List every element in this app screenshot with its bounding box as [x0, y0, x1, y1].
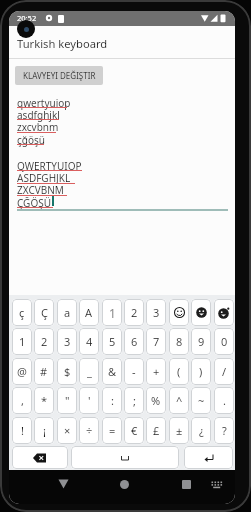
button[interactable]: ': [79, 387, 99, 414]
staticText: %: [151, 393, 161, 408]
staticText: $: [64, 364, 71, 379]
staticText: (: [177, 364, 181, 379]
button[interactable]: 6: [124, 328, 144, 355]
button[interactable]: [120, 480, 129, 489]
button[interactable]: 1: [102, 299, 122, 326]
button[interactable]: ç: [12, 299, 32, 326]
button[interactable]: -: [124, 358, 144, 385]
staticText: ': [88, 393, 91, 408]
button[interactable]: [12, 446, 68, 469]
staticText: 5: [109, 334, 116, 349]
button[interactable]: +: [146, 358, 166, 385]
button[interactable]: Ç: [34, 299, 54, 326]
staticText: 6: [131, 334, 138, 349]
button[interactable]: a: [57, 299, 77, 326]
staticText: +: [153, 364, 160, 379]
button[interactable]: [214, 299, 234, 326]
staticText: 7: [153, 334, 160, 349]
staticText: ¡: [43, 423, 46, 438]
staticText: A: [85, 305, 93, 320]
button[interactable]: ^: [169, 387, 189, 414]
button[interactable]: (: [169, 358, 189, 385]
button[interactable]: [191, 299, 211, 326]
button[interactable]: :: [102, 387, 122, 414]
button[interactable]: 1: [12, 328, 32, 355]
button[interactable]: ×: [57, 417, 77, 444]
button[interactable]: [58, 479, 69, 489]
staticText: 4: [86, 334, 93, 349]
button[interactable]: &: [102, 358, 122, 385]
staticText: ?: [222, 423, 227, 438]
button[interactable]: ~: [191, 387, 211, 414]
button[interactable]: ÷: [79, 417, 99, 444]
button[interactable]: 7: [146, 328, 166, 355]
staticText: -: [132, 364, 136, 379]
button[interactable]: [71, 446, 179, 469]
button[interactable]: =: [102, 417, 122, 444]
button[interactable]: *: [34, 387, 54, 414]
staticText: 20:52: [17, 13, 37, 23]
staticText: 8: [176, 334, 183, 349]
staticText: *: [41, 393, 48, 408]
button[interactable]: 3: [146, 299, 166, 326]
button[interactable]: [182, 480, 191, 489]
button[interactable]: $: [57, 358, 77, 385]
button[interactable]: 9: [191, 328, 211, 355]
button[interactable]: [184, 446, 233, 469]
staticText: ASDFGHJKL: [17, 171, 71, 185]
staticText: ": [65, 393, 70, 408]
staticText: asdfghjkl: [17, 108, 60, 122]
staticText: 0: [221, 334, 228, 349]
staticText: ^: [176, 393, 183, 408]
button[interactable]: [169, 299, 189, 326]
button[interactable]: @: [12, 358, 32, 385]
button[interactable]: KLAVYEYI DEĞIŞTIR: [15, 66, 103, 85]
button[interactable]: _: [79, 358, 99, 385]
button[interactable]: ¿: [191, 417, 211, 444]
staticText: 2: [131, 305, 138, 320]
button[interactable]: A: [79, 299, 99, 326]
staticText: 9: [198, 334, 205, 349]
button[interactable]: 2: [124, 299, 144, 326]
staticText: @: [17, 364, 27, 379]
button[interactable]: 4: [79, 328, 99, 355]
staticText: 3: [64, 334, 71, 349]
staticText: zxcvbnm: [17, 120, 59, 134]
staticText: QWERTYUIOP: [17, 159, 82, 173]
staticText: .: [223, 393, 226, 408]
button[interactable]: ±: [169, 417, 189, 444]
button[interactable]: ): [191, 358, 211, 385]
staticText: ZXCVBNM: [17, 183, 64, 197]
staticText: ç: [19, 305, 25, 320]
button[interactable]: ?: [214, 417, 234, 444]
button[interactable]: ;: [124, 387, 144, 414]
button[interactable]: 3: [57, 328, 77, 355]
staticText: /: [222, 364, 227, 379]
button[interactable]: ,: [12, 387, 32, 414]
staticText: ×: [64, 423, 71, 438]
button[interactable]: /: [214, 358, 234, 385]
button[interactable]: %: [146, 387, 166, 414]
staticText: 1: [109, 305, 116, 321]
staticText: ~: [198, 393, 205, 408]
staticText: =: [109, 423, 116, 438]
button[interactable]: 5: [102, 328, 122, 355]
staticText: Turkish keyboard: [17, 36, 108, 51]
staticText: !: [21, 423, 24, 438]
staticText: KLAVYEYI DEĞIŞTIR: [23, 70, 96, 81]
staticText: ,: [21, 393, 24, 408]
button[interactable]: 0: [214, 328, 234, 355]
staticText: &: [108, 364, 117, 379]
staticText: 1: [19, 334, 26, 349]
button[interactable]: €: [124, 417, 144, 444]
button[interactable]: £: [146, 417, 166, 444]
button[interactable]: #: [34, 358, 54, 385]
button[interactable]: .: [214, 387, 234, 414]
staticText: 2: [41, 334, 48, 349]
button[interactable]: 2: [34, 328, 54, 355]
button[interactable]: ¡: [34, 417, 54, 444]
button[interactable]: ": [57, 387, 77, 414]
staticText: ÷: [86, 423, 93, 438]
button[interactable]: !: [12, 417, 32, 444]
button[interactable]: 8: [169, 328, 189, 355]
